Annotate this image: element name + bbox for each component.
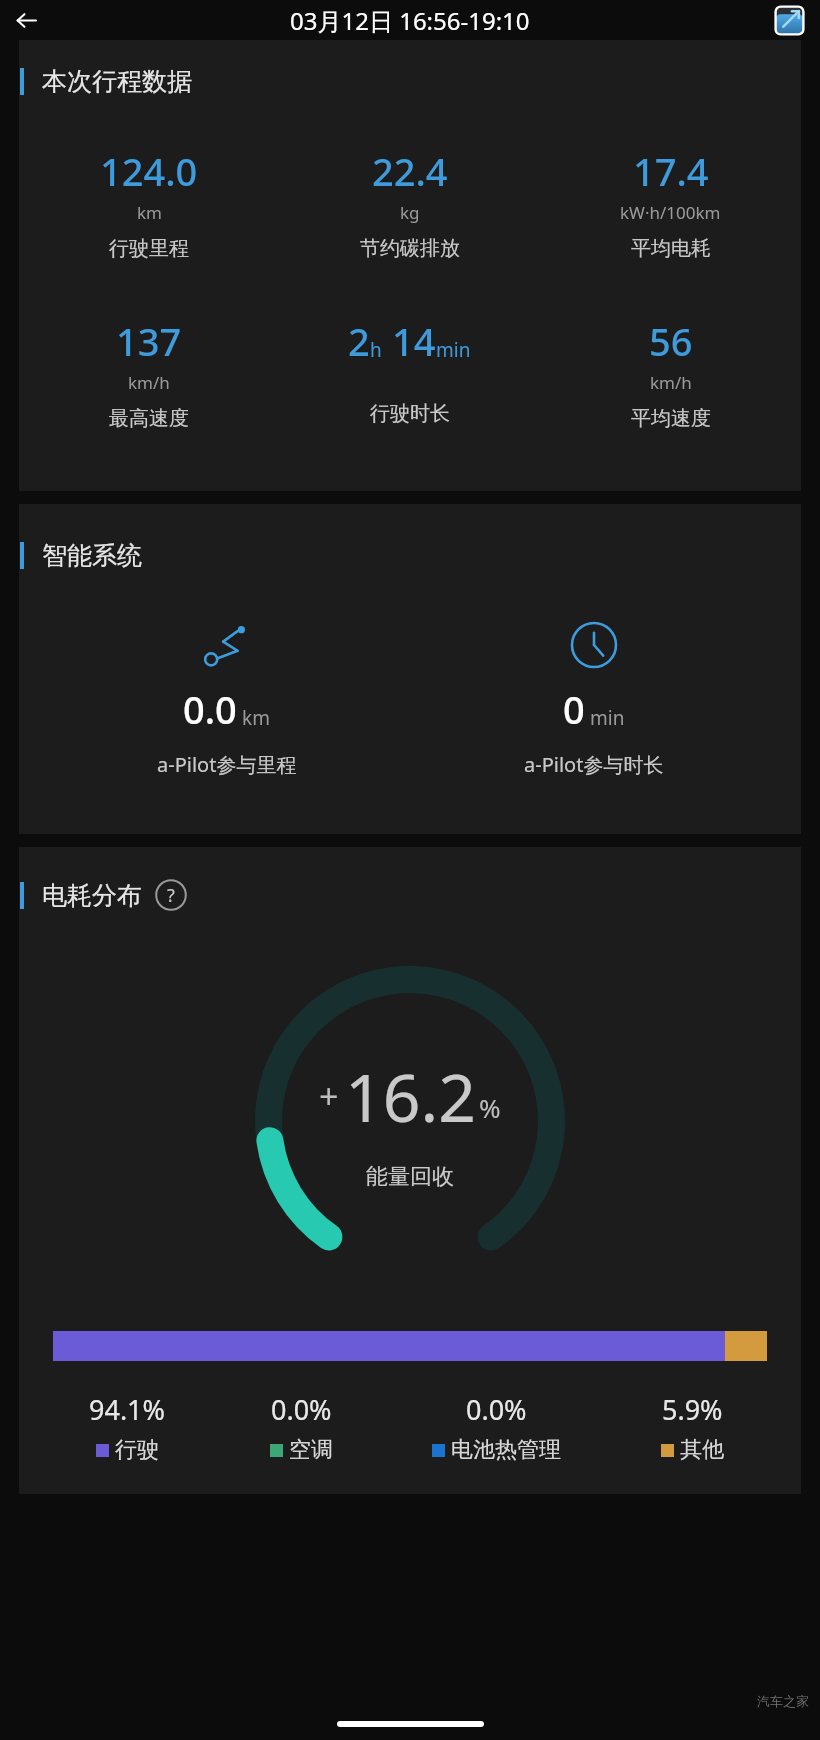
button[interactable]: 94.1%: [41, 1391, 214, 1464]
staticText: km/h: [650, 371, 692, 394]
staticText: 124.0: [100, 145, 198, 197]
staticText: km/h: [128, 371, 170, 394]
staticText: min: [436, 337, 471, 363]
staticText: kg: [400, 201, 420, 224]
staticText: 平均速度: [631, 406, 711, 431]
button[interactable]: 0.0%: [214, 1391, 388, 1464]
staticText: 行驶时长: [370, 401, 450, 426]
staticText: 0.0%: [466, 1391, 527, 1428]
staticText: ?: [167, 883, 175, 908]
staticText: 137: [116, 315, 182, 367]
button[interactable]: 0.0%: [388, 1391, 605, 1464]
button[interactable]: 0.0: [43, 621, 410, 778]
staticText: 本次行程数据: [42, 66, 192, 97]
staticText: 行驶: [115, 1436, 159, 1464]
staticText: 5.9%: [662, 1391, 723, 1428]
staticText: 2: [348, 315, 370, 367]
staticText: 电池热管理: [451, 1436, 561, 1464]
staticText: %: [479, 1090, 501, 1125]
staticText: 94.1%: [89, 1391, 166, 1428]
staticText: 17.4: [633, 145, 709, 197]
staticText: 行驶里程: [109, 236, 189, 261]
button[interactable]: Back: [8, 2, 44, 38]
staticText: 其他: [680, 1436, 724, 1464]
staticText: 空调: [289, 1436, 333, 1464]
button[interactable]: Expand: [771, 2, 807, 38]
staticText: 汽车之家: [757, 1693, 809, 1709]
staticText: 0: [563, 683, 585, 735]
button[interactable]: Help: [155, 879, 187, 911]
staticText: 最高速度: [109, 406, 189, 431]
staticText: 56: [649, 315, 693, 367]
button[interactable]: 124.0: [19, 145, 279, 261]
staticText: h: [370, 337, 382, 363]
staticText: 电耗分布: [42, 880, 142, 911]
button[interactable]: 137: [19, 315, 279, 431]
staticText: 节约碳排放: [360, 236, 460, 261]
button[interactable]: 17.4: [540, 145, 801, 261]
staticText: km: [242, 705, 270, 731]
staticText: 14: [392, 315, 436, 367]
staticText: 22.4: [372, 145, 448, 197]
button[interactable]: 56: [540, 315, 801, 431]
staticText: +: [319, 1073, 339, 1119]
button[interactable]: 0: [410, 621, 777, 778]
staticText: min: [590, 705, 625, 731]
staticText: 平均电耗: [631, 236, 711, 261]
staticText: km: [137, 201, 162, 224]
staticText: 智能系统: [42, 540, 142, 571]
staticText: kW·h/100km: [620, 201, 721, 224]
staticText: 0.0%: [271, 1391, 332, 1428]
button[interactable]: 5.9%: [605, 1391, 779, 1464]
staticText: 0.0: [183, 683, 237, 735]
staticText: a-Pilot参与时长: [524, 751, 664, 778]
button[interactable]: 22.4: [279, 145, 540, 261]
staticText: a-Pilot参与里程: [157, 751, 297, 778]
button[interactable]: 2: [279, 315, 540, 426]
staticText: 03月12日 16:56-19:10: [290, 4, 530, 37]
staticText: 能量回收: [366, 1163, 454, 1191]
staticText: 16.2: [345, 1051, 476, 1141]
